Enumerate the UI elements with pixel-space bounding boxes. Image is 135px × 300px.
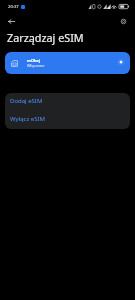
button[interactable]: mObej [5,52,130,74]
button[interactable]: Wyłącz eSIM [5,111,130,129]
staticText: Zarządzaj eSIM [7,30,84,45]
staticText: mObej [27,58,41,63]
staticText: Dodaj eSIM [10,97,43,105]
button[interactable]: Back [4,14,18,28]
button[interactable]: Dodaj eSIM [5,93,130,111]
staticText: Włączone [27,63,45,68]
staticText: Wyłącz eSIM [10,115,45,123]
button[interactable]: Settings [116,14,130,28]
staticText: 20:37 [8,4,19,10]
